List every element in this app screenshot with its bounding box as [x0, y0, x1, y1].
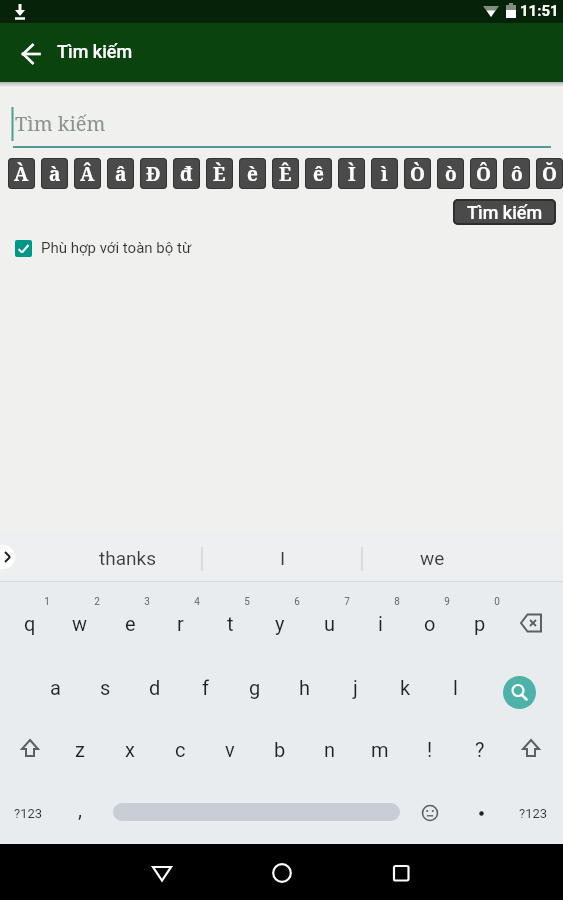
staticText: 7: [344, 596, 350, 608]
button[interactable]: Tìm kiếm: [453, 199, 556, 225]
button[interactable]: r: [156, 597, 204, 649]
button[interactable]: [113, 803, 400, 821]
button[interactable]: [503, 676, 536, 709]
button[interactable]: ê: [305, 158, 332, 189]
staticText: Â: [80, 161, 95, 187]
button[interactable]: i: [356, 597, 404, 649]
button[interactable]: u: [306, 597, 354, 649]
button[interactable]: n: [306, 723, 354, 775]
staticText: j: [353, 676, 358, 699]
button[interactable]: À: [8, 158, 35, 189]
button[interactable]: ?123: [4, 787, 52, 839]
staticText: z: [75, 738, 85, 761]
button[interactable]: Ô: [470, 158, 497, 189]
staticText: g: [249, 676, 261, 699]
button[interactable]: ?123: [509, 787, 557, 839]
button[interactable]: e: [106, 597, 154, 649]
staticText: â: [115, 161, 127, 187]
button[interactable]: m: [356, 723, 404, 775]
staticText: thanks: [99, 547, 156, 569]
button[interactable]: Ŏ: [536, 158, 563, 189]
staticText: w: [72, 612, 88, 635]
button[interactable]: !: [406, 723, 454, 775]
staticText: È: [213, 161, 226, 187]
staticText: Tìm kiếm: [467, 202, 543, 223]
button[interactable]: s: [81, 661, 129, 713]
button[interactable]: f: [181, 661, 229, 713]
button[interactable]: w: [56, 597, 104, 649]
button[interactable]: [138, 848, 186, 896]
button[interactable]: d: [131, 661, 179, 713]
staticText: Tìm kiếm: [57, 41, 133, 62]
staticText: n: [324, 738, 336, 761]
button[interactable]: đ: [173, 158, 200, 189]
button[interactable]: y: [256, 597, 304, 649]
staticText: ì: [381, 161, 388, 187]
staticText: è: [247, 161, 258, 187]
staticText: d: [149, 676, 161, 699]
staticText: 11:51: [520, 2, 559, 20]
staticText: Ò: [410, 161, 425, 187]
button[interactable]: [457, 787, 505, 839]
button[interactable]: Phù hợp với toàn bộ từ: [15, 238, 192, 258]
button[interactable]: k: [381, 661, 429, 713]
button[interactable]: I: [213, 542, 353, 574]
button[interactable]: ò: [437, 158, 464, 189]
button[interactable]: h: [281, 661, 329, 713]
button[interactable]: [507, 597, 555, 649]
button[interactable]: Ò: [404, 158, 431, 189]
button[interactable]: t: [206, 597, 254, 649]
staticText: a: [50, 676, 61, 699]
staticText: f: [202, 676, 209, 699]
button[interactable]: [10, 41, 54, 65]
button[interactable]: Ì: [338, 158, 365, 189]
staticText: t: [227, 612, 234, 635]
button[interactable]: o: [406, 597, 454, 649]
button[interactable]: v: [206, 723, 254, 775]
button[interactable]: Â: [74, 158, 101, 189]
staticText: Tìm kiếm: [15, 110, 106, 137]
button[interactable]: [258, 848, 306, 896]
button[interactable]: x: [106, 723, 154, 775]
button[interactable]: l: [431, 661, 479, 713]
button[interactable]: ?: [456, 723, 504, 775]
button[interactable]: È: [206, 158, 233, 189]
button[interactable]: p: [456, 597, 504, 649]
staticText: i: [378, 612, 383, 635]
button[interactable]: thanks: [57, 542, 197, 574]
button[interactable]: ô: [503, 158, 530, 189]
button[interactable]: Đ: [140, 158, 167, 189]
button[interactable]: c: [156, 723, 204, 775]
staticText: s: [100, 676, 111, 699]
staticText: u: [324, 612, 336, 635]
staticText: 3: [144, 596, 150, 608]
button[interactable]: â: [107, 158, 134, 189]
staticText: à: [49, 161, 61, 187]
staticText: we: [420, 547, 445, 569]
button[interactable]: ì: [371, 158, 398, 189]
button[interactable]: a: [31, 661, 79, 713]
button[interactable]: Ê: [272, 158, 299, 189]
button[interactable]: ,: [56, 783, 104, 835]
button[interactable]: z: [56, 723, 104, 775]
button[interactable]: [6, 723, 54, 775]
button[interactable]: b: [256, 723, 304, 775]
staticText: x: [125, 738, 135, 761]
staticText: c: [175, 738, 186, 761]
button[interactable]: g: [231, 661, 279, 713]
button[interactable]: è: [239, 158, 266, 189]
button[interactable]: we: [362, 542, 502, 574]
staticText: Ŏ: [542, 161, 557, 187]
staticText: 0: [494, 596, 500, 608]
staticText: 4: [194, 596, 200, 608]
button[interactable]: [507, 723, 555, 775]
staticText: h: [299, 676, 311, 699]
button[interactable]: j: [331, 661, 379, 713]
button[interactable]: [406, 787, 454, 839]
staticText: Ì: [348, 161, 356, 187]
button[interactable]: [377, 848, 425, 896]
button[interactable]: à: [41, 158, 68, 189]
staticText: ê: [313, 161, 324, 187]
staticText: 8: [394, 596, 400, 608]
button[interactable]: q: [6, 597, 54, 649]
